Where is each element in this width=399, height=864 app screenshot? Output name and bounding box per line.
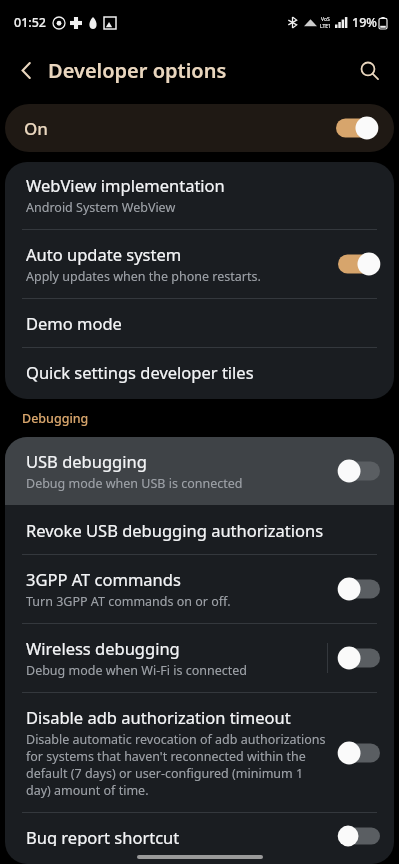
staticText: Disable automatic revocation of adb auth… — [26, 731, 328, 799]
staticText: Debugging — [22, 410, 89, 427]
button[interactable]: USB debugging — [5, 437, 394, 505]
button[interactable]: Bug report shortcut — [5, 813, 394, 864]
button[interactable]: Off — [338, 826, 380, 846]
staticText: 19% — [352, 14, 377, 31]
button[interactable]: Off — [338, 647, 380, 669]
staticText: Demo mode — [26, 312, 122, 334]
button[interactable]: Quick settings developer tiles — [5, 348, 394, 399]
staticText: Revoke USB debugging authorizations — [26, 519, 324, 541]
button[interactable]: Off — [338, 460, 380, 482]
staticText: 3GPP AT commands — [26, 568, 181, 590]
staticText: 01:52 — [14, 14, 47, 31]
staticText: Turn 3GPP AT commands on or off. — [26, 593, 231, 610]
button[interactable]: On — [338, 253, 380, 275]
staticText: Developer options — [48, 57, 227, 84]
staticText: Quick settings developer tiles — [26, 361, 254, 383]
button[interactable]: Off — [338, 578, 380, 600]
staticText: Auto update system — [26, 243, 182, 265]
button[interactable]: Disable adb authorization timeout — [5, 693, 394, 812]
button[interactable]: 3GPP AT commands — [5, 555, 394, 623]
staticText: Apply updates when the phone restarts. — [26, 268, 261, 285]
staticText: USB debugging — [26, 450, 147, 472]
staticText: WebView implementation — [26, 174, 225, 196]
button[interactable]: On — [336, 117, 378, 139]
staticText: VoS — [321, 16, 330, 23]
button[interactable]: Back — [6, 50, 46, 90]
staticText: Wireless debugging — [26, 637, 180, 659]
staticText: Debug mode when Wi-Fi is connected — [26, 662, 247, 679]
button[interactable]: Demo mode — [5, 299, 394, 347]
staticText: Android System WebView — [26, 199, 176, 216]
staticText: On — [24, 117, 48, 140]
button[interactable]: Auto update system — [5, 230, 394, 298]
button[interactable]: WebView implementation — [5, 162, 394, 229]
staticText: Disable adb authorization timeout — [26, 706, 291, 728]
staticText: LTE1 — [320, 23, 331, 30]
button[interactable]: Wireless debugging — [5, 624, 394, 692]
staticText: Bug report shortcut — [26, 826, 180, 846]
button[interactable]: Revoke USB debugging authorizations — [5, 505, 394, 554]
button[interactable]: On — [5, 104, 394, 152]
button[interactable]: Off — [338, 742, 380, 764]
staticText: Debug mode when USB is connected — [26, 475, 243, 492]
button[interactable]: Search — [347, 48, 391, 92]
